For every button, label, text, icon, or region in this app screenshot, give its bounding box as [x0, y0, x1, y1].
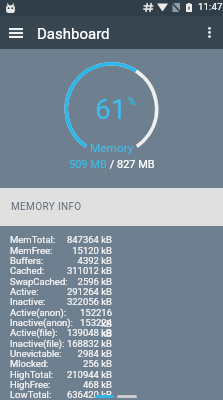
button[interactable]: MemTotal: — [10, 234, 112, 245]
button[interactable]: Unevictable: — [10, 348, 112, 359]
staticText: 4392 kB — [77, 255, 112, 266]
staticText: / 827 MB — [107, 158, 155, 171]
button[interactable]: Buffers: — [10, 255, 112, 266]
staticText: 139048 kB — [66, 327, 112, 338]
staticText: LowTotal: — [10, 389, 52, 400]
staticText: MEMORY INFO — [11, 201, 82, 213]
staticText: Memory — [90, 141, 134, 155]
button[interactable]: Inactive(file): — [10, 338, 112, 349]
staticText: MemFree: — [10, 245, 53, 256]
button[interactable]: Active(file): — [10, 327, 112, 338]
staticText: Buffers: — [10, 255, 44, 266]
staticText: HighTotal: — [10, 369, 54, 380]
staticText: Cached: — [10, 265, 45, 276]
button[interactable]: Open navigation drawer — [0, 16, 31, 49]
staticText: Dashboard — [37, 25, 110, 43]
staticText: % — [128, 96, 136, 108]
button[interactable]: Inactive: — [10, 296, 112, 307]
button[interactable]: SwapCached: — [10, 276, 112, 287]
button[interactable]: LowTotal: — [10, 389, 112, 400]
staticText: 322056 kB — [66, 296, 112, 307]
staticText: Inactive: — [10, 296, 46, 307]
staticText: SwapCached: — [10, 276, 68, 287]
staticText: 210944 kB — [66, 369, 112, 380]
staticText: 11:47 — [198, 1, 223, 12]
staticText: 636420 kB — [66, 389, 112, 400]
staticText: MemTotal: — [10, 234, 56, 245]
button[interactable]: HighTotal: — [10, 369, 112, 380]
staticText: HighFree: — [10, 379, 51, 390]
button[interactable]: Active(anon): — [10, 307, 112, 329]
staticText: 15120 kB — [72, 245, 112, 256]
staticText: 168832 kB — [66, 338, 112, 349]
staticText: 2984 kB — [77, 348, 112, 359]
button[interactable]: Inactive(anon): — [10, 317, 112, 339]
staticText: Active(file): — [10, 327, 58, 338]
button[interactable]: More options — [195, 16, 223, 49]
staticText: 153224 kB — [73, 317, 112, 339]
staticText: 509 MB — [69, 158, 107, 171]
staticText: 311012 kB — [66, 265, 112, 276]
staticText: Mlocked: — [10, 358, 49, 369]
button[interactable]: Cached: — [10, 265, 112, 276]
staticText: Active: — [10, 286, 39, 297]
staticText: 2596 kB — [77, 276, 112, 287]
staticText: Inactive(anon): — [10, 317, 73, 328]
staticText: 256 kB — [82, 358, 112, 369]
button[interactable]: HighFree: — [10, 379, 112, 390]
staticText: Inactive(file): — [10, 338, 65, 349]
staticText: Active(anon): — [10, 307, 67, 318]
button[interactable]: Active: — [10, 286, 112, 297]
staticText: 61 — [95, 93, 127, 126]
staticText: 152216 kB — [67, 307, 112, 329]
staticText: 468 kB — [82, 379, 112, 390]
staticText: Unevictable: — [10, 348, 62, 359]
button[interactable]: Mlocked: — [10, 358, 112, 369]
staticText: 291264 kB — [66, 286, 112, 297]
staticText: 847364 kB — [66, 234, 112, 245]
button[interactable]: MemFree: — [10, 245, 112, 256]
